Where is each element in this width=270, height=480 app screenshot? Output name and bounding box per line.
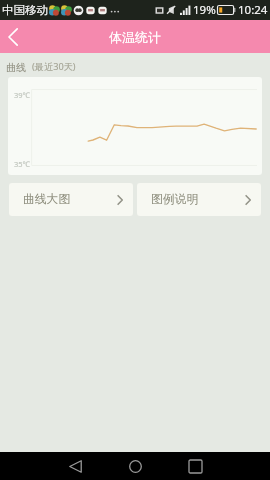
staticText: 35℃ <box>14 159 31 169</box>
staticText: 体温统计 <box>109 29 161 45</box>
button[interactable]: Back <box>0 20 25 53</box>
button[interactable]: Back <box>45 452 105 480</box>
button[interactable]: 曲线大图 <box>9 183 133 216</box>
staticText: 曲线大图 <box>23 192 71 207</box>
button[interactable]: Home <box>105 452 165 480</box>
button[interactable]: Recents <box>165 452 225 480</box>
staticText: 图例说明 <box>151 192 199 207</box>
staticText: 中国移动 <box>2 3 48 17</box>
staticText: 10:24 <box>238 2 268 18</box>
staticText: 39℃ <box>14 90 31 100</box>
staticText: 曲线 <box>6 61 26 74</box>
button[interactable]: 图例说明 <box>137 183 261 216</box>
staticText: 19% <box>193 2 216 18</box>
staticText: (最近30天) <box>32 60 76 73</box>
